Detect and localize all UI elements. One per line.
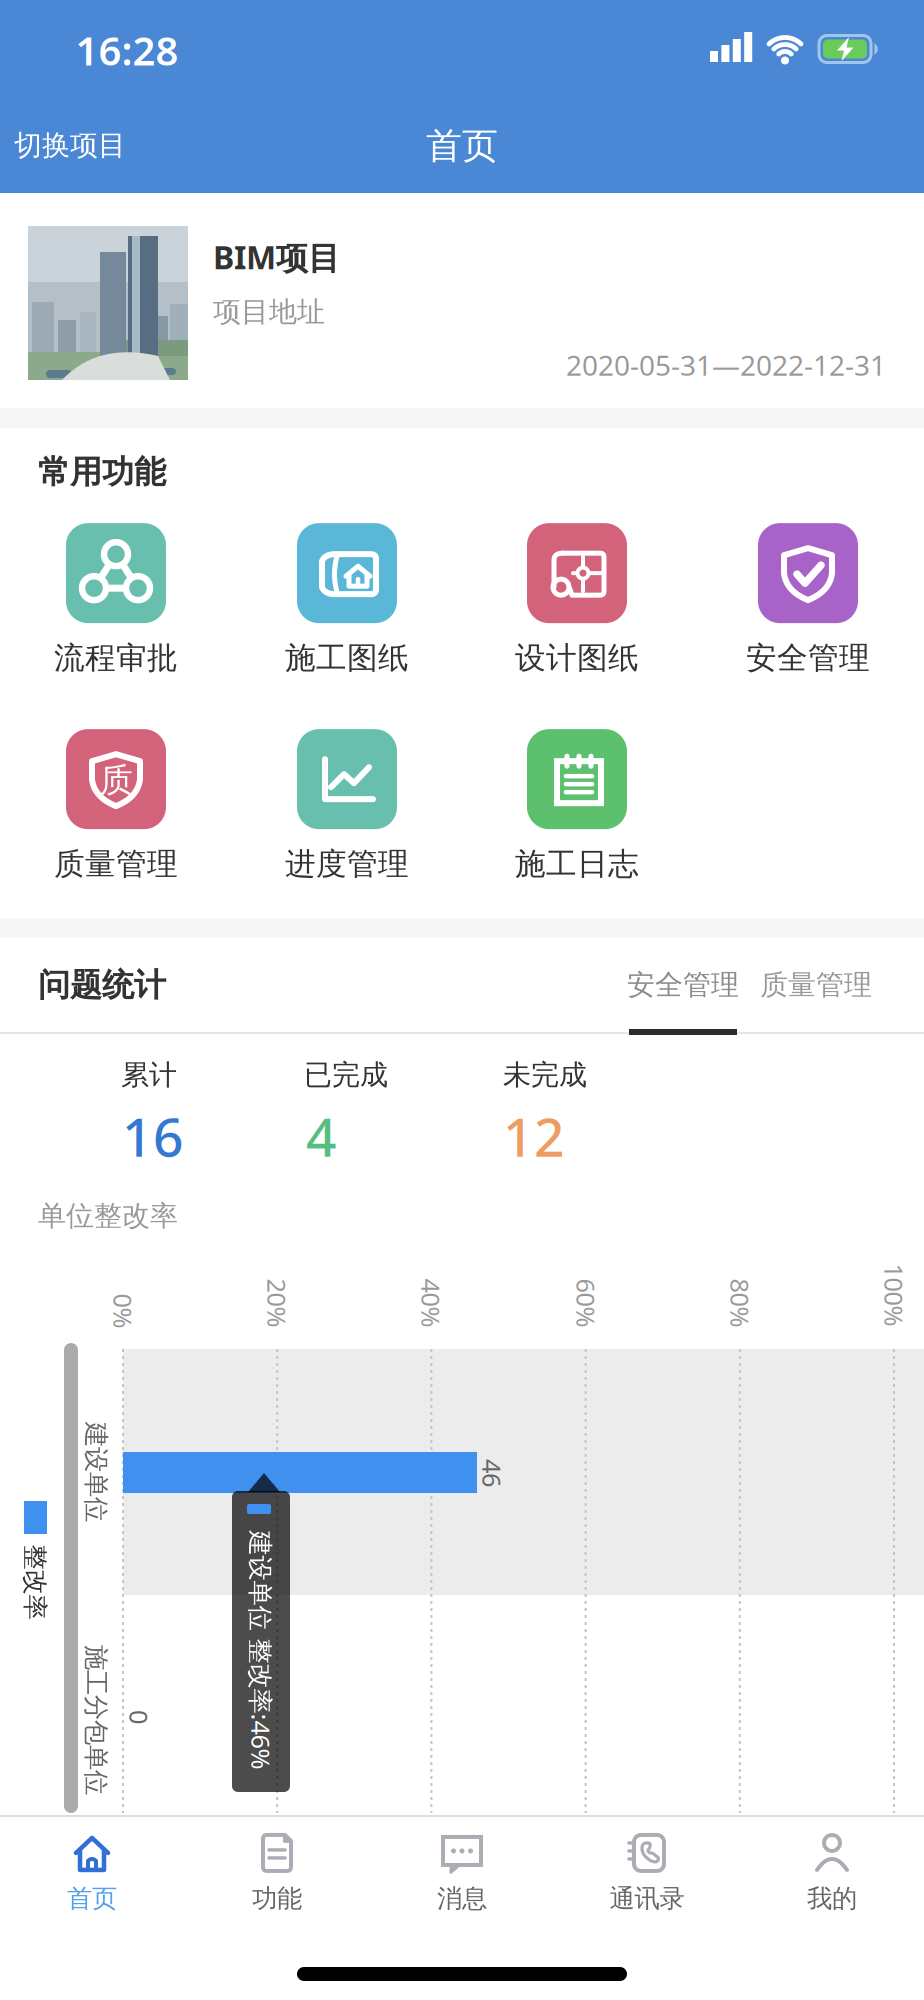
staticText: 46 — [478, 1456, 506, 1490]
button[interactable]: 安全管理 — [608, 938, 758, 1032]
button[interactable]: BIM项目 — [0, 193, 924, 408]
staticText: 首页 — [426, 124, 498, 168]
staticText: 80% — [715, 1286, 764, 1320]
button[interactable]: 首页 — [7, 1816, 177, 1928]
staticText: 通讯录 — [609, 1883, 684, 1914]
staticText: 安全管理 — [746, 639, 870, 677]
staticText: 20% — [252, 1286, 301, 1320]
staticText: 0 — [132, 1700, 146, 1734]
staticText: 质 — [99, 760, 132, 801]
staticText: 2020-05-31—2022-12-31 — [566, 346, 886, 384]
staticText: 首页 — [67, 1883, 117, 1914]
staticText: 施工日志 — [515, 845, 639, 883]
staticText: 累计 — [121, 1058, 177, 1092]
button[interactable]: 施工日志 — [487, 722, 667, 890]
staticText: 流程审批 — [54, 639, 178, 677]
staticText: 16:28 — [75, 23, 178, 76]
button[interactable]: 安全管理 — [718, 516, 898, 684]
staticText: 建设单位 整改率:46% — [141, 1633, 380, 1667]
staticText: 未完成 — [503, 1058, 587, 1092]
staticText: 常用功能 — [38, 452, 166, 492]
staticText: 12 — [503, 1101, 565, 1171]
staticText: 施工分包单位 — [21, 1704, 171, 1735]
button[interactable]: 质 — [26, 722, 206, 890]
staticText: 0% — [105, 1294, 140, 1328]
button[interactable]: 我的 — [747, 1816, 917, 1928]
staticText: 60% — [561, 1286, 610, 1320]
button[interactable]: 消息 — [377, 1816, 547, 1928]
staticText: 进度管理 — [285, 845, 409, 883]
staticText: 功能 — [252, 1883, 302, 1914]
staticText: 整改率 — [0, 1566, 72, 1597]
staticText: 质量管理 — [54, 845, 178, 883]
staticText: 100% — [862, 1278, 924, 1312]
staticText: 问题统计 — [38, 965, 166, 1005]
staticText: 切换项目 — [14, 128, 126, 163]
button[interactable]: 施工图纸 — [257, 516, 437, 684]
staticText: 项目地址 — [213, 295, 325, 329]
staticText: 消息 — [437, 1883, 487, 1914]
staticText: 我的 — [807, 1883, 857, 1914]
button[interactable]: 切换项目 — [0, 99, 160, 192]
staticText: 安全管理 — [627, 968, 739, 1002]
button[interactable]: 设计图纸 — [487, 516, 667, 684]
staticText: 4 — [306, 1101, 337, 1171]
staticText: 施工图纸 — [285, 639, 409, 677]
button[interactable]: 功能 — [192, 1816, 362, 1928]
button[interactable]: 质量管理 — [741, 938, 891, 1032]
staticText: 建设单位 — [46, 1456, 146, 1487]
staticText: BIM项目 — [213, 236, 340, 278]
staticText: 质量管理 — [760, 968, 872, 1002]
staticText: 设计图纸 — [515, 639, 639, 677]
button[interactable]: 通讯录 — [562, 1816, 732, 1928]
button[interactable]: 进度管理 — [257, 722, 437, 890]
button[interactable]: 流程审批 — [26, 516, 206, 684]
staticText: 40% — [406, 1286, 455, 1320]
staticText: 单位整改率 — [38, 1199, 178, 1233]
staticText: 16 — [122, 1101, 184, 1171]
staticText: 已完成 — [304, 1058, 388, 1092]
